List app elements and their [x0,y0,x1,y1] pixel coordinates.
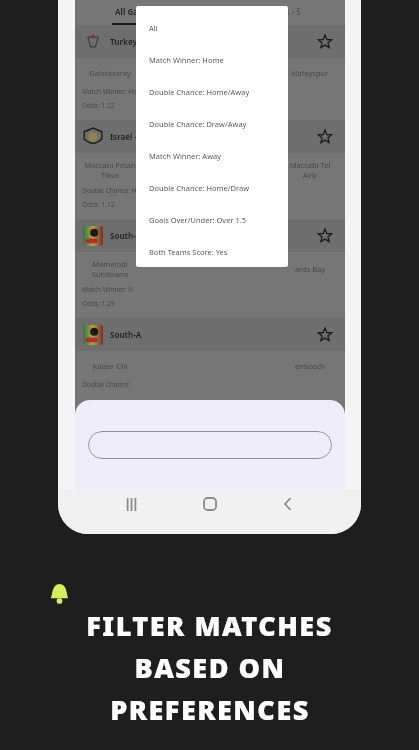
staticText: Double Chance: Home/Away [149,87,250,97]
button[interactable]: Mamelodi Sundowns [75,252,345,313]
button[interactable]: Maccabi Petah Tikva [75,153,345,214]
staticText: PREFERENCES [110,691,310,728]
staticText: Israel - State Cup [110,131,178,142]
staticText: enbosch [281,361,339,371]
button[interactable]: Double Chance: Draw/Away [136,108,288,140]
staticText: Hatayspor [281,68,339,78]
staticText: Odds: 1.22 [82,101,115,110]
button[interactable]: Top Picks - 5 [210,0,345,23]
button[interactable]: Apply filter [88,431,332,459]
staticText: Double Chance: Home/Away [82,186,169,195]
button[interactable]: Double Chance: Home/Draw [136,172,288,204]
button[interactable]: All [136,12,288,44]
staticText: Maccabi Petah Tikva [81,160,139,180]
button[interactable]: South-A [75,318,345,351]
button[interactable]: Match Winner: Away [136,140,288,172]
staticText: Turkey - Süper Lig [110,36,181,47]
button[interactable]: Goals Over/Under: Over 1.5 [136,204,288,236]
staticText: Top Picks - 5 [255,6,301,17]
staticText: All [149,23,158,33]
staticText: Galatasaray [81,68,139,78]
button[interactable]: Israel - State Cup [75,120,345,153]
staticText: Mamelodi Sundowns [81,259,139,279]
staticText: ards Bay [281,264,339,274]
button[interactable]: Match Winner: Home [136,44,288,76]
staticText: Match Winner: Away [149,151,222,161]
staticText: Match Winner: Home [149,55,224,65]
staticText: Both Teams Score: Yes [149,247,228,257]
staticText: Double Chance: [82,380,131,389]
staticText: South-A [110,230,142,241]
button[interactable]: All Games - 14 [75,0,210,23]
button[interactable]: South-A [75,219,345,252]
button[interactable]: Double Chance: Home/Away [136,76,288,108]
button[interactable]: Favourite league [313,125,337,149]
button[interactable]: Recent apps [116,489,146,519]
staticText: Double Chance: Home/Draw [149,183,250,193]
other: Notification bell [48,583,71,606]
staticText: South-A [110,329,142,340]
staticText: BASED ON [134,649,286,686]
staticText: Match Winner: H [82,285,134,294]
staticText: Double Chance: Draw/Away [149,119,247,129]
staticText: Kaizer Chi [81,361,139,371]
button[interactable]: Favourite league [313,30,337,54]
button[interactable]: Home [195,489,225,519]
staticText: Odds: 1.12 [82,200,115,209]
button[interactable]: Favourite league [313,224,337,248]
staticText: All Games - 14 [115,6,171,17]
button[interactable]: Turkey - Süper Lig [75,25,345,58]
button[interactable]: Back [273,489,303,519]
staticText: FILTER MATCHES [86,607,333,644]
button[interactable]: Kaizer Chi [75,351,345,399]
staticText: Maccabi Tel Aviv [281,160,339,180]
button[interactable]: Both Teams Score: Yes [136,236,288,267]
staticText: Goals Over/Under: Over 1.5 [149,215,247,225]
staticText: Match Winner: Home [82,87,147,96]
staticText: Odds: 1.29 [82,299,115,308]
button[interactable]: Galatasaray [75,58,345,115]
button[interactable]: Favourite league [313,323,337,347]
